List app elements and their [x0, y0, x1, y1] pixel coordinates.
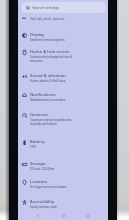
- button[interactable]: Search settings: [21, 2, 106, 13]
- staticText: Use gestures and keys to quickly access: [30, 118, 72, 122]
- staticText: Location: [30, 179, 48, 185]
- staticText: Sound & vibration: [30, 73, 66, 79]
- staticText: Display: [30, 32, 45, 38]
- button[interactable]: Recent apps: [83, 211, 92, 220]
- button[interactable]: Home & lock screen: [18, 46, 108, 68]
- button[interactable]: Battery: [18, 136, 108, 153]
- button[interactable]: Notifications: [18, 89, 108, 106]
- staticText: On / 4 apps have access to location: [30, 185, 67, 189]
- button[interactable]: Dark style, panels, app icons: [18, 16, 108, 21]
- button[interactable]: Sound & vibration: [18, 70, 108, 87]
- staticText: Display, interaction, audio: [30, 205, 57, 209]
- button[interactable]: Storage: [18, 158, 108, 175]
- staticText: Gestures: [30, 112, 48, 118]
- button[interactable]: Accessibility: [18, 196, 108, 213]
- staticText: Home & lock screen: [30, 49, 70, 55]
- button[interactable]: Location: [18, 176, 108, 193]
- staticText: Notification history, conversations: [30, 98, 66, 102]
- button[interactable]: Display: [18, 29, 108, 46]
- button[interactable]: Back: [34, 211, 43, 220]
- staticText: Search settings: [32, 5, 60, 10]
- staticText: 55% used - 233 GB free: [30, 167, 55, 171]
- staticText: Dark style, panels, app icons: [30, 17, 65, 21]
- staticText: Notifications: [30, 92, 56, 98]
- staticText: Battery: [30, 139, 45, 145]
- staticText: Accessibility: [30, 199, 55, 205]
- staticText: 100%: [30, 145, 36, 149]
- staticText: Storage: [30, 161, 46, 167]
- staticText: Volume, vibration, Do Not Disturb: [30, 79, 66, 83]
- staticText: frequently used functions: [30, 122, 57, 126]
- staticText: lock screens: [30, 59, 43, 63]
- staticText: Customise what is displayed on home &: [30, 55, 72, 59]
- button[interactable]: Gestures: [18, 109, 108, 131]
- staticText: Dark theme, font size, brightness: [30, 38, 65, 42]
- button[interactable]: Home: [59, 211, 68, 220]
